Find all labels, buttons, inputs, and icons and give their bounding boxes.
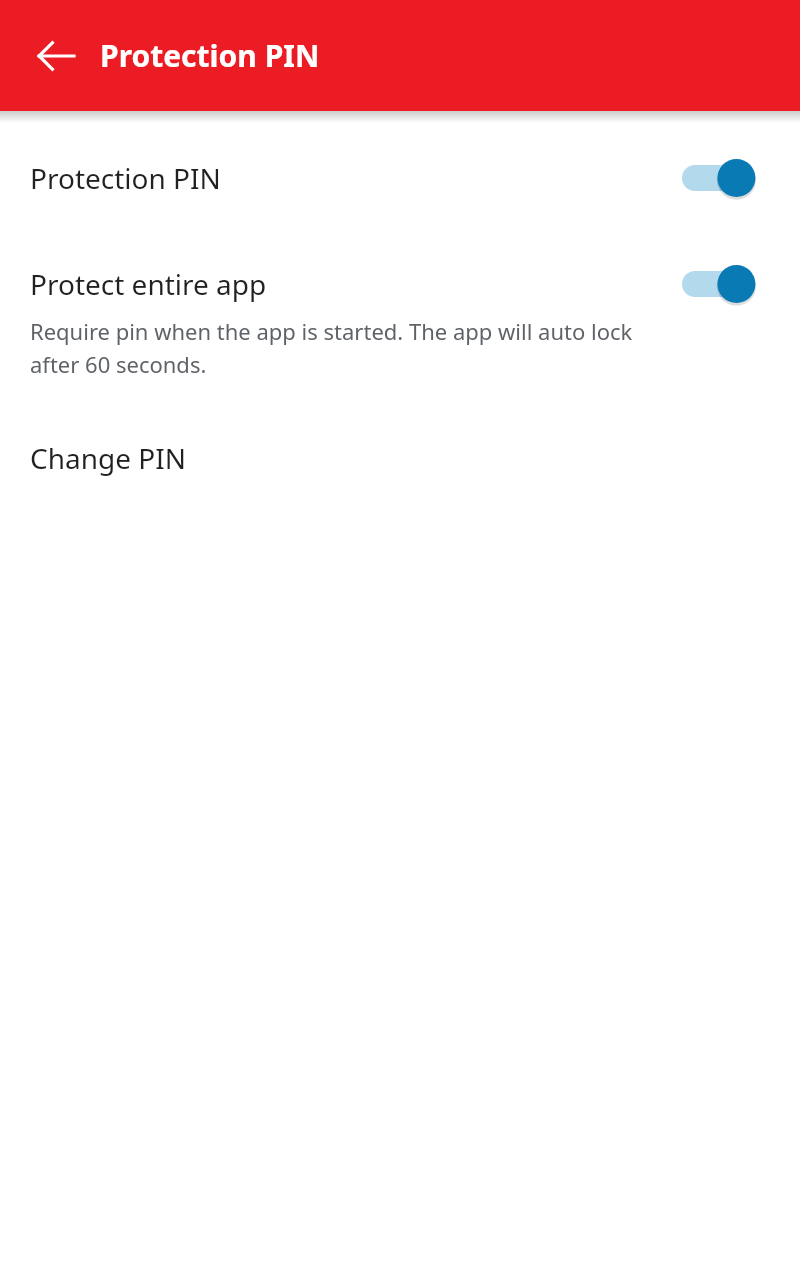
staticText: Protection PIN [100, 35, 320, 76]
button[interactable]: Change PIN [0, 427, 800, 489]
staticText: Protect entire app [30, 265, 267, 303]
button[interactable]: Protection PIN [0, 152, 800, 204]
staticText: Change PIN [30, 439, 187, 477]
staticText: Protection PIN [30, 159, 221, 197]
button[interactable]: Toggle Protect entire app [682, 258, 760, 310]
button[interactable]: Back [20, 20, 92, 92]
button[interactable]: Protect entire app [0, 258, 800, 379]
button[interactable]: Toggle Protection PIN [682, 152, 760, 204]
staticText: Require pin when the app is started. The… [30, 316, 660, 379]
